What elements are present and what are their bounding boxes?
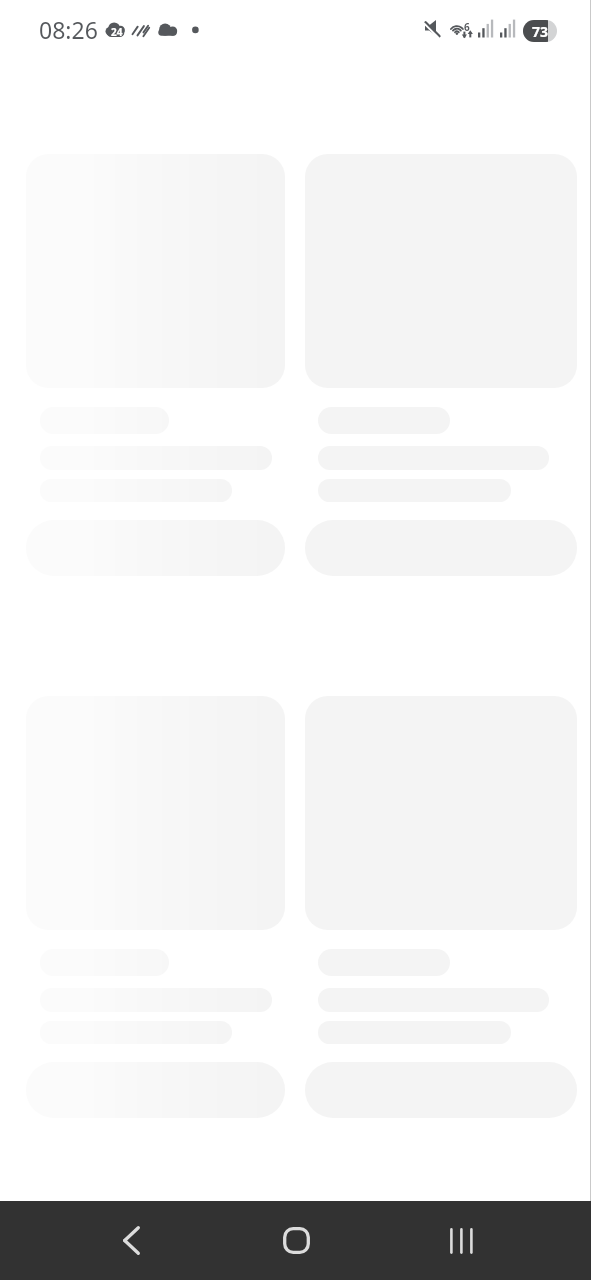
staticText: 24 [111,25,123,39]
button[interactable]: Back [99,1201,164,1280]
staticText: 08:26 [39,14,98,45]
staticText: 73 [532,22,549,41]
button[interactable]: Recent apps [429,1201,494,1280]
button[interactable]: Home [264,1201,329,1280]
staticText: 6 [464,20,470,34]
